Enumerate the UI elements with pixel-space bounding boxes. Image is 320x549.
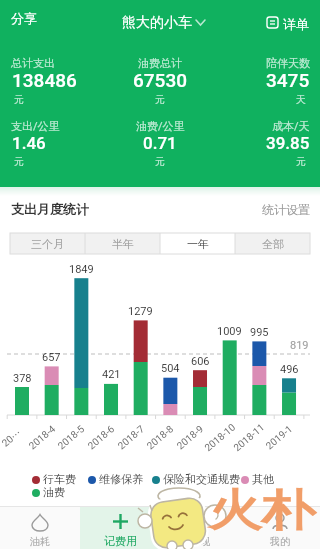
staticText: 138486: [12, 69, 77, 91]
staticText: 421: [102, 368, 121, 381]
staticText: 分享: [11, 10, 37, 26]
staticText: 其他: [252, 472, 274, 486]
staticText: 819: [290, 339, 309, 352]
staticText: 496: [280, 363, 299, 376]
staticText: 油费/公里: [136, 119, 185, 133]
staticText: 元: [155, 93, 165, 106]
staticText: 油费总计: [138, 56, 182, 70]
staticText: 606: [191, 355, 210, 368]
staticText: 2018-6: [86, 423, 117, 452]
button[interactable]: [260, 8, 320, 36]
button[interactable]: 全部: [235, 233, 310, 254]
staticText: 2019-1: [264, 423, 295, 452]
staticText: 一年: [187, 237, 209, 251]
staticText: 504: [161, 362, 180, 375]
staticText: 元: [14, 155, 24, 168]
staticText: 维修保养: [99, 472, 143, 486]
button[interactable]: [240, 197, 315, 219]
staticText: 成本/天: [272, 119, 310, 133]
staticText: 995: [250, 326, 269, 339]
staticText: 行车费: [43, 472, 76, 486]
staticText: 2018-4: [27, 423, 58, 452]
button[interactable]: 一年: [160, 233, 235, 254]
staticText: 我的: [270, 535, 290, 548]
button[interactable]: 我的: [240, 507, 320, 549]
staticText: 1.46: [12, 133, 46, 153]
button[interactable]: 发现: [160, 507, 240, 549]
staticText: 保险和交通规费: [163, 472, 240, 486]
staticText: 天: [296, 93, 306, 106]
staticText: 半年: [112, 237, 134, 251]
staticText: 记费用: [104, 534, 137, 548]
staticText: 39.85: [266, 133, 310, 153]
staticText: 详单: [283, 16, 309, 32]
staticText: 发现: [190, 535, 210, 548]
staticText: 378: [13, 372, 32, 385]
staticText: 2018-7: [116, 423, 147, 452]
staticText: 熊大的小车: [122, 14, 192, 32]
staticText: 油耗: [30, 535, 50, 548]
staticText: 67530: [133, 69, 187, 91]
staticText: 2018-10: [202, 421, 238, 454]
staticText: 2018-5: [56, 423, 87, 452]
button[interactable]: 三个月: [10, 233, 85, 254]
staticText: 2018-9: [175, 423, 206, 452]
staticText: 油费: [43, 485, 65, 499]
staticText: 陪伴天数: [266, 56, 310, 70]
button[interactable]: 记费用: [80, 507, 160, 549]
staticText: 1009: [217, 325, 242, 338]
button[interactable]: 分享: [0, 8, 70, 36]
staticText: 1279: [128, 305, 153, 318]
button[interactable]: 油耗: [0, 507, 80, 549]
staticText: 三个月: [31, 237, 64, 251]
staticText: 全部: [262, 237, 284, 251]
staticText: 火: [208, 483, 262, 537]
staticText: 元: [14, 93, 24, 106]
staticText: 0.71: [143, 133, 177, 153]
staticText: 统计设置: [262, 202, 310, 217]
staticText: 支出/公里: [11, 119, 60, 133]
button[interactable]: [100, 6, 220, 36]
staticText: 2018-8: [145, 423, 176, 452]
staticText: 2018-11: [231, 421, 267, 454]
button[interactable]: 半年: [85, 233, 160, 254]
staticText: 3475: [266, 69, 310, 91]
staticText: 657: [42, 351, 61, 364]
staticText: 支出月度统计: [11, 201, 89, 217]
staticText: 元: [296, 155, 306, 168]
staticText: 20⋯: [0, 426, 24, 450]
staticText: 朴: [261, 483, 315, 537]
staticText: 1849: [69, 263, 94, 276]
staticText: 总计支出: [11, 56, 55, 70]
staticText: 元: [155, 155, 165, 168]
